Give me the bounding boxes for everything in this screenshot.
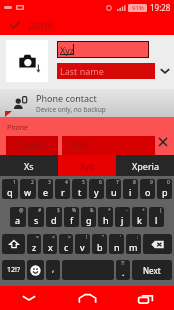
staticText: 7 <box>116 179 119 186</box>
staticText: , <box>52 263 55 274</box>
button[interactable]: 4 <box>55 179 70 199</box>
staticText: j <box>121 214 124 226</box>
button[interactable]: 6 <box>89 179 104 199</box>
button[interactable]: 8 <box>123 179 138 199</box>
staticText: . <box>122 266 125 278</box>
staticText: 9 <box>150 179 153 186</box>
button[interactable]: @ <box>10 207 26 227</box>
staticText: Last name <box>60 65 104 77</box>
button[interactable]: Xyz <box>58 155 116 176</box>
button[interactable]: ! <box>75 234 90 254</box>
staticText: b <box>97 241 103 253</box>
staticText: o <box>145 186 151 198</box>
staticText: v <box>80 241 85 253</box>
staticText: Mobile <box>19 140 45 151</box>
button[interactable]: , <box>46 260 60 280</box>
staticText: Done <box>28 18 54 32</box>
staticText: k <box>137 214 142 226</box>
button[interactable] <box>6 40 48 82</box>
staticText: d <box>51 214 57 226</box>
button[interactable]: 5 <box>72 179 87 199</box>
button[interactable]: 0 <box>157 179 172 199</box>
button[interactable]: + <box>132 207 147 227</box>
button[interactable]: 9 <box>140 179 155 199</box>
staticText: 0 <box>167 179 170 186</box>
button[interactable]: Xperia <box>116 155 174 176</box>
staticText: @ <box>19 207 24 214</box>
button[interactable]: Xs <box>0 155 58 176</box>
staticText: Xyz <box>80 160 95 172</box>
staticText: y <box>94 186 99 198</box>
staticText: f <box>70 214 74 226</box>
button[interactable]: Remove phone number <box>156 135 170 149</box>
staticText: 8 <box>133 179 136 186</box>
staticText: t <box>78 186 82 198</box>
button[interactable]: ?! <box>116 260 130 280</box>
button[interactable]: Back <box>0 286 58 310</box>
button[interactable]: Recent apps <box>116 286 174 310</box>
staticText: ' <box>120 234 122 241</box>
button[interactable]: Home <box>58 286 116 310</box>
staticText: & <box>90 207 94 214</box>
button[interactable]: = <box>27 234 41 254</box>
button[interactable]: Emoji <box>27 260 44 280</box>
staticText: m <box>129 241 138 253</box>
button[interactable]: Shift <box>2 234 25 254</box>
staticText: 12!? <box>7 265 20 275</box>
button[interactable]: $ <box>46 207 62 227</box>
staticText: 2 <box>31 179 34 186</box>
staticText: ?! <box>121 260 125 267</box>
staticText: e <box>43 186 49 198</box>
staticText: $ <box>57 207 60 214</box>
button[interactable]: Backspace <box>143 234 172 254</box>
button[interactable]: Phone contact <box>0 89 174 117</box>
staticText: i <box>129 186 132 198</box>
staticText: 12345 <box>66 140 89 151</box>
button[interactable]: - <box>115 207 130 227</box>
staticText: Next <box>143 265 161 276</box>
staticText: r <box>61 186 65 198</box>
button[interactable]: * <box>98 207 113 227</box>
staticText: 5 <box>82 179 85 186</box>
button[interactable]: Next <box>132 260 172 280</box>
staticText: w <box>24 186 32 198</box>
staticText: Xperia <box>132 160 159 172</box>
button[interactable]: & <box>81 207 96 227</box>
staticText: > <box>68 234 71 241</box>
button[interactable]: Mobile <box>6 136 58 155</box>
staticText: % <box>72 207 77 214</box>
button[interactable]: # <box>28 207 44 227</box>
staticText: x <box>48 241 53 253</box>
button[interactable]: 12345 <box>62 136 155 155</box>
button[interactable]: Xyz <box>57 41 149 58</box>
button[interactable]: Space <box>62 260 114 280</box>
staticText: + <box>142 207 145 214</box>
button[interactable]: ' <box>109 234 124 254</box>
button[interactable]: : <box>126 234 141 254</box>
button[interactable]: " <box>92 234 107 254</box>
button[interactable]: 2 <box>20 179 36 199</box>
button[interactable]: 12!? <box>2 260 25 280</box>
button[interactable]: ( <box>149 207 164 227</box>
staticText: c <box>64 241 69 253</box>
staticText: - <box>126 207 128 214</box>
staticText: Xs <box>24 160 34 172</box>
button[interactable]: Expand name fields <box>156 63 174 79</box>
button[interactable]: > <box>59 234 73 254</box>
button[interactable]: % <box>64 207 79 227</box>
button[interactable]: 3 <box>38 179 53 199</box>
staticText: # <box>38 207 42 214</box>
button[interactable]: 1 <box>2 179 18 199</box>
button[interactable]: < <box>43 234 57 254</box>
staticText: Phone <box>7 123 29 133</box>
staticText: 6 <box>99 179 102 186</box>
staticText: Phone contact <box>36 92 97 104</box>
staticText: a <box>15 214 21 226</box>
staticText: u <box>111 186 117 198</box>
staticText: = <box>36 234 39 241</box>
staticText: p <box>162 186 168 198</box>
button[interactable]: Done <box>0 14 62 35</box>
button[interactable]: 7 <box>106 179 121 199</box>
button[interactable]: Last name <box>57 63 155 79</box>
staticText: ! <box>86 234 88 241</box>
